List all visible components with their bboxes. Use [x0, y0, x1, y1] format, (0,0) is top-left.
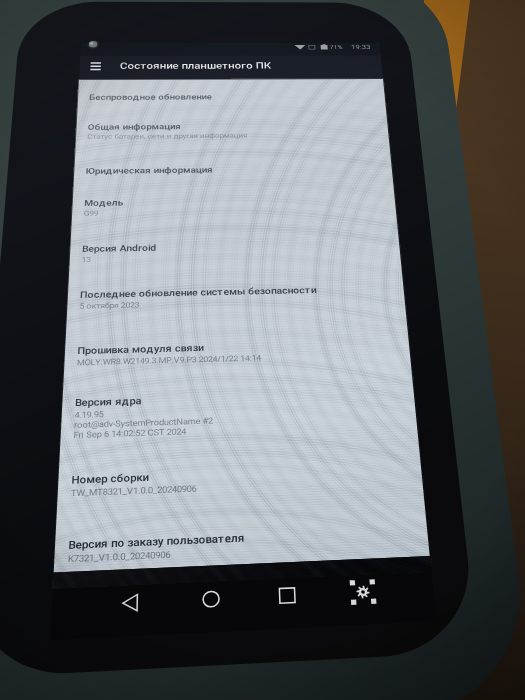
button[interactable]: Tablet PC status screen [0, 0, 525, 700]
